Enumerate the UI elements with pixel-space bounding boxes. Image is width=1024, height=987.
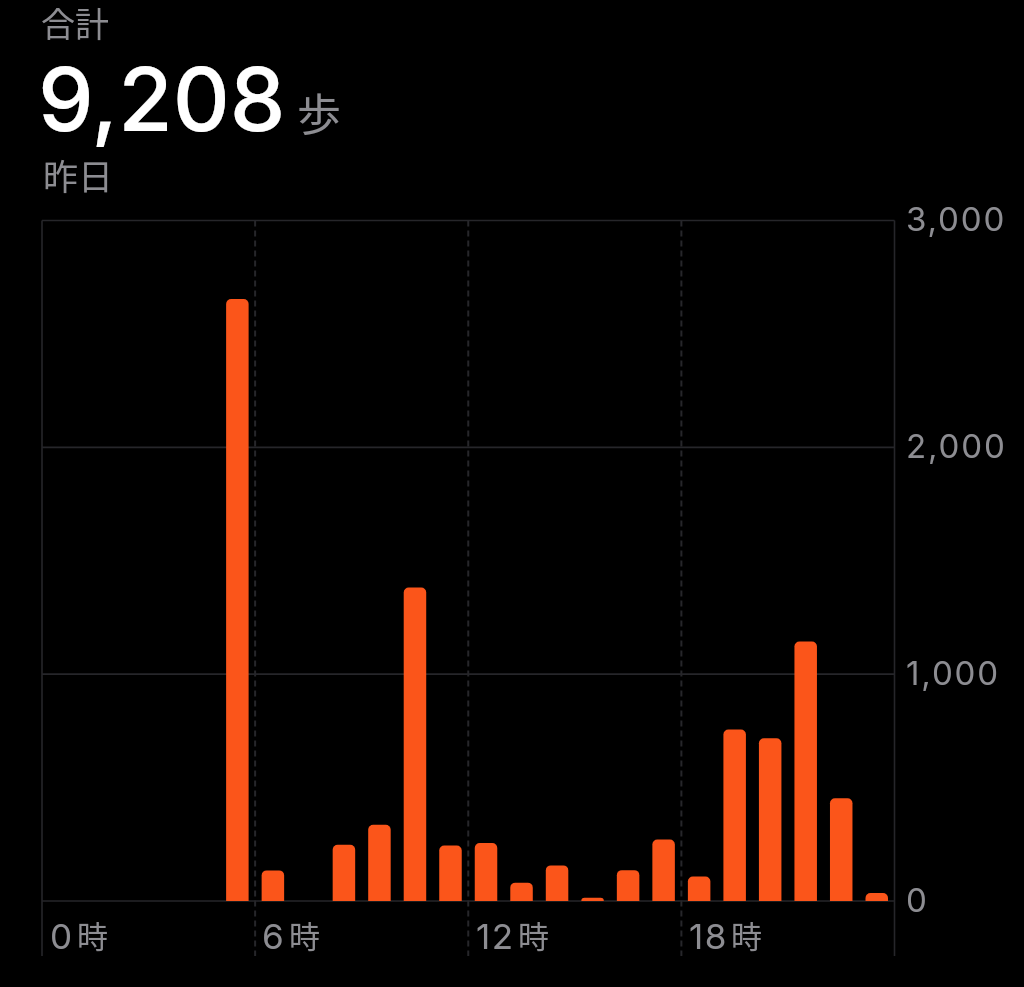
staticText: 2,000 bbox=[906, 426, 1007, 466]
staticText: 6 bbox=[262, 915, 286, 957]
staticText: 時 bbox=[518, 912, 549, 957]
staticText: 1,000 bbox=[906, 653, 1001, 693]
staticText: 合計 bbox=[41, 0, 109, 47]
staticText: 時 bbox=[289, 912, 320, 957]
staticText: 時 bbox=[77, 912, 108, 957]
staticText: 昨日 bbox=[43, 149, 114, 200]
staticText: 歩 bbox=[297, 80, 341, 144]
staticText: 0 bbox=[50, 915, 74, 957]
staticText: 9,208 bbox=[38, 45, 286, 152]
staticText: 12 bbox=[476, 915, 515, 957]
button[interactable]: 合計 bbox=[30, 0, 360, 200]
staticText: 0 bbox=[906, 880, 929, 920]
staticText: 3,000 bbox=[906, 199, 1007, 239]
button[interactable]: Hourly step chart bbox=[0, 0, 1024, 987]
staticText: 18 bbox=[689, 915, 728, 957]
staticText: 時 bbox=[731, 912, 762, 957]
